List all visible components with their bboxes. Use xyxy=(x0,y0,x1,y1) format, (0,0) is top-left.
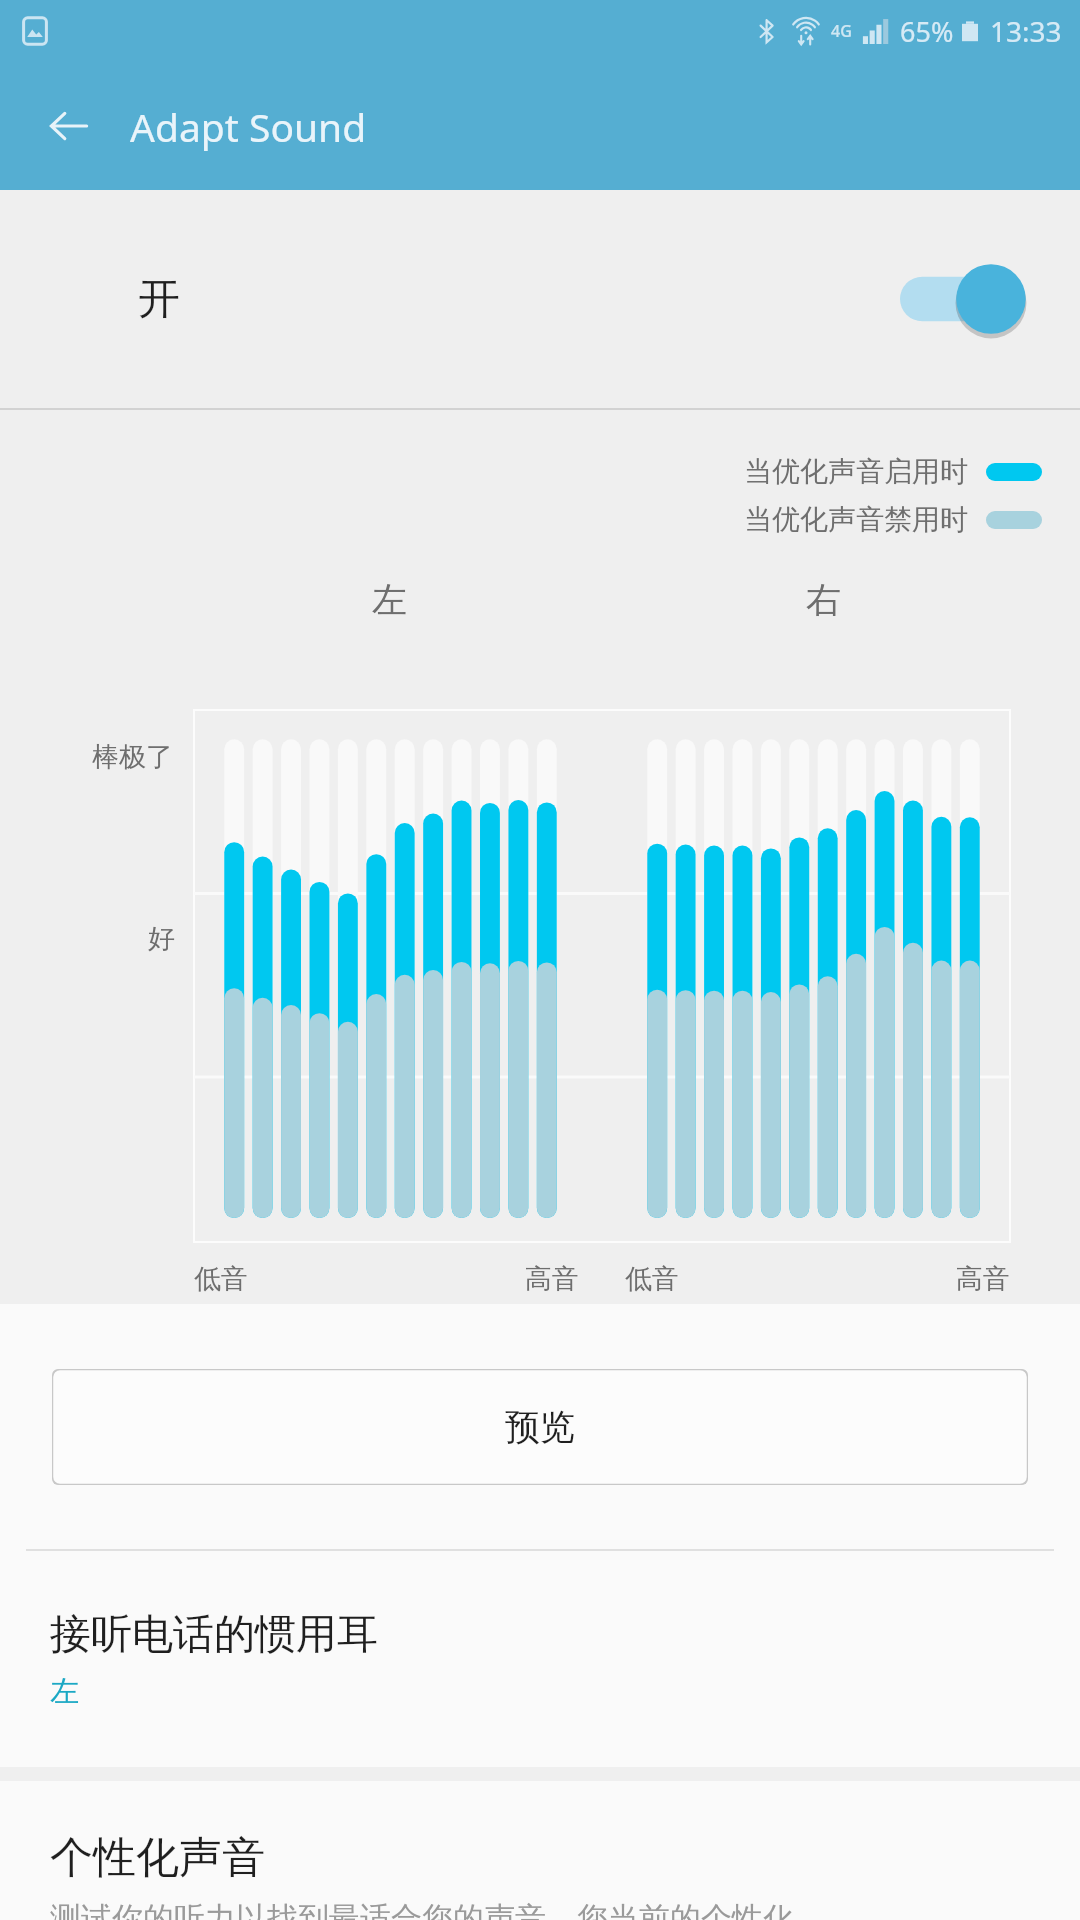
staticText: 开 xyxy=(138,273,180,326)
staticText: 预览 xyxy=(505,1405,575,1449)
staticText: 高音 xyxy=(525,1262,579,1296)
staticText: 当优化声音启用时 xyxy=(744,454,968,489)
staticText: 个性化声音 xyxy=(50,1831,265,1885)
staticText: 测试你的听力以找到最适合您的声音。您当前的个性化 xyxy=(50,1899,794,1920)
staticText: 右 xyxy=(806,578,841,622)
button[interactable]: Back xyxy=(38,95,100,157)
staticText: 低音 xyxy=(625,1262,679,1296)
button[interactable]: 接听电话的惯用耳 xyxy=(0,1551,1080,1767)
staticText: 左 xyxy=(50,1673,79,1710)
staticText: 棒极了 xyxy=(92,740,173,774)
staticText: 4G xyxy=(831,20,852,42)
button[interactable]: 开 xyxy=(0,190,1080,408)
staticText: Adapt Sound xyxy=(130,100,367,153)
staticText: 当优化声音禁用时 xyxy=(744,502,968,537)
staticText: 65% xyxy=(900,13,954,50)
staticText: 好 xyxy=(148,922,175,956)
button[interactable]: 个性化声音 xyxy=(0,1781,1080,1920)
staticText: 高音 xyxy=(956,1262,1010,1296)
button[interactable]: 预览 xyxy=(52,1369,1028,1485)
staticText: 左 xyxy=(372,578,407,622)
staticText: 低音 xyxy=(194,1262,248,1296)
staticText: 接听电话的惯用耳 xyxy=(50,1609,378,1661)
staticText: 13:33 xyxy=(990,12,1062,50)
